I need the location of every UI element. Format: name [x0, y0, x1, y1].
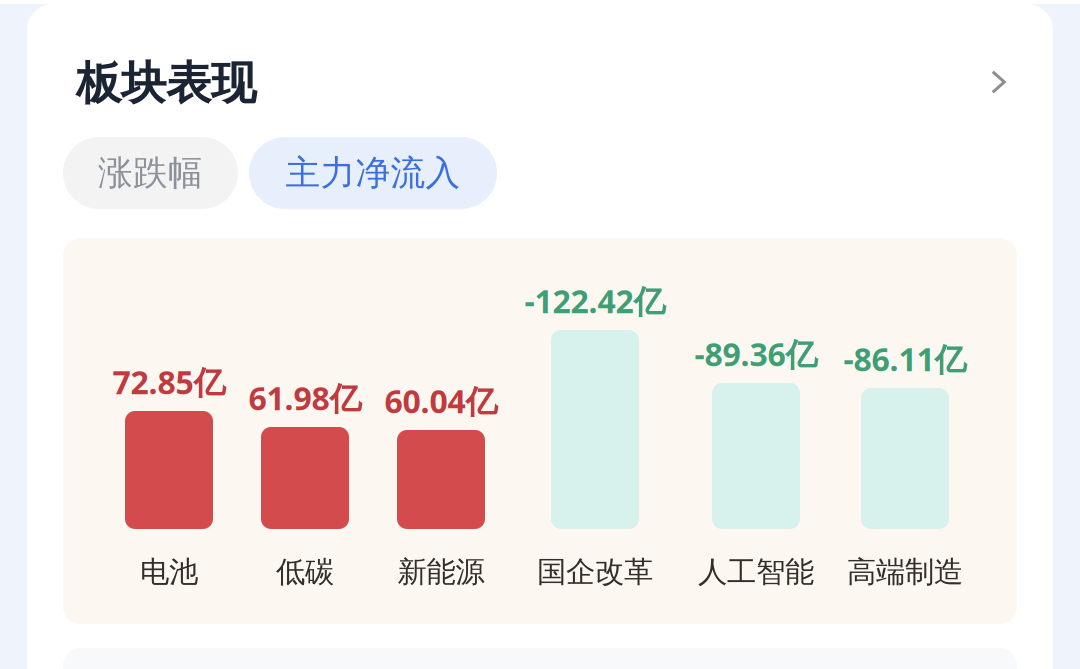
staticText: 低碳 — [276, 554, 334, 590]
staticText: 61.98亿 — [248, 376, 361, 419]
button[interactable]: -122.42亿 — [520, 238, 670, 624]
staticText: -122.42亿 — [524, 279, 665, 322]
staticText: -86.11亿 — [843, 337, 966, 380]
button[interactable]: 60.04亿 — [384, 238, 498, 624]
staticText: 国企改革 — [537, 554, 653, 590]
staticText: -89.36亿 — [694, 332, 817, 375]
staticText: 主力净流入 — [285, 152, 460, 194]
button[interactable]: -86.11亿 — [842, 238, 968, 624]
button[interactable]: -89.36亿 — [692, 238, 820, 624]
staticText: 高端制造 — [847, 554, 963, 590]
button[interactable]: 主力净流入 — [249, 137, 497, 209]
button[interactable]: 板块表现，查看更多 — [27, 4, 1053, 137]
staticText: 新能源 — [397, 554, 484, 590]
staticText: 60.04亿 — [384, 379, 497, 422]
button[interactable]: 61.98亿 — [248, 238, 362, 624]
staticText: 电池 — [140, 554, 198, 590]
staticText: 人工智能 — [698, 554, 814, 590]
staticText: 72.85亿 — [112, 360, 225, 403]
staticText: 板块表现 — [76, 56, 256, 111]
button[interactable]: 涨跌幅 — [63, 137, 238, 209]
staticText: 涨跌幅 — [98, 152, 203, 194]
button[interactable]: 72.85亿 — [112, 238, 226, 624]
